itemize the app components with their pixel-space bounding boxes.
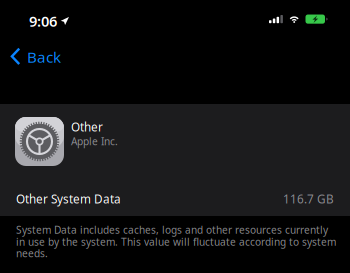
button[interactable]: Other System Data xyxy=(0,180,350,216)
staticText: 9:06 xyxy=(29,11,57,31)
staticText: System Data includes caches, logs and ot… xyxy=(16,223,328,237)
staticText: Other xyxy=(71,119,103,135)
staticText: needs. xyxy=(16,246,48,260)
staticText: 116.7 GB xyxy=(283,191,334,207)
staticText: in use by the system. This value will fl… xyxy=(16,235,336,249)
staticText: Other System Data xyxy=(16,191,121,207)
button[interactable]: Back xyxy=(0,39,73,74)
staticText: Back xyxy=(27,47,61,67)
staticText: Apple Inc. xyxy=(71,134,118,148)
